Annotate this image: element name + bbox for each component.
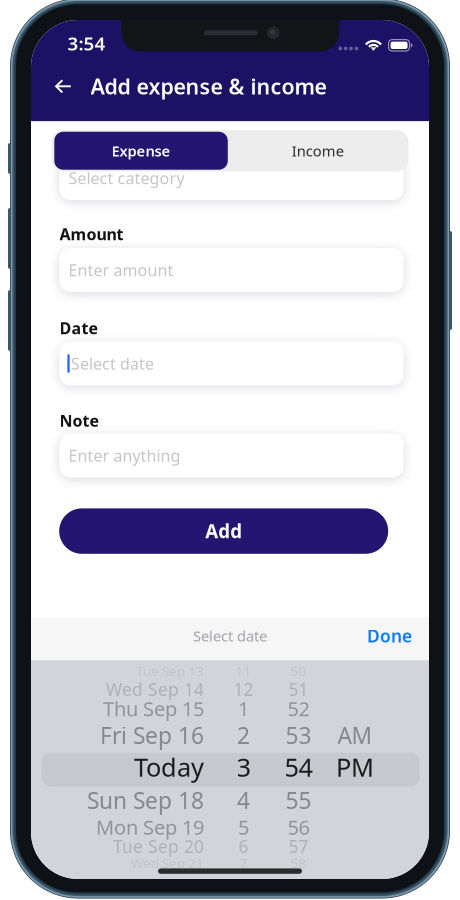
staticText: Done	[367, 624, 412, 647]
staticText: PM	[336, 750, 374, 784]
staticText: 3	[236, 750, 250, 784]
button[interactable]: Enter anything	[59, 433, 403, 477]
button[interactable]: Income	[228, 132, 407, 170]
button[interactable]: Back	[50, 74, 76, 99]
staticText: Wed Sep 14	[106, 678, 204, 701]
staticText: 3:54	[67, 31, 105, 56]
button[interactable]: Select category	[59, 156, 403, 200]
button[interactable]: Enter amount	[59, 248, 403, 292]
staticText: Enter anything	[68, 445, 180, 466]
button[interactable]: Expense	[54, 132, 228, 170]
staticText: 7	[239, 854, 247, 872]
staticText: Add	[205, 519, 242, 543]
staticText: 6	[238, 835, 248, 858]
staticText: 12	[233, 678, 253, 701]
staticText: Sun Sep 18	[87, 785, 204, 815]
staticText: Mon Sep 19	[96, 814, 204, 840]
staticText: Today	[134, 750, 204, 784]
button[interactable]: Select date	[59, 341, 403, 385]
staticText: Expense	[111, 141, 170, 160]
staticText: Select date	[71, 353, 154, 374]
staticText: Enter amount	[68, 259, 173, 281]
staticText: 57	[288, 835, 308, 858]
staticText: AM	[337, 720, 372, 750]
staticText: 11	[235, 662, 251, 680]
staticText: 2	[237, 720, 250, 750]
staticText: 53	[285, 720, 311, 750]
staticText: 52	[287, 695, 309, 722]
staticText: Wed Sep 21	[131, 854, 204, 872]
staticText: Thu Sep 15	[103, 695, 204, 722]
staticText: 1	[238, 695, 249, 722]
staticText: Select category	[68, 167, 184, 189]
staticText: 51	[288, 678, 308, 701]
staticText: Add expense & income	[90, 72, 326, 100]
button[interactable]: Add	[59, 508, 388, 554]
staticText: 5	[238, 814, 249, 840]
staticText: 58	[290, 854, 306, 872]
staticText: Tue Sep 20	[113, 835, 204, 858]
staticText: 56	[287, 814, 309, 840]
button[interactable]: Add expense & income	[90, 66, 326, 106]
staticText: Amount	[59, 223, 123, 245]
staticText: Note	[59, 410, 99, 431]
staticText: Date	[59, 317, 98, 339]
staticText: Income	[292, 141, 344, 160]
staticText: 4	[237, 785, 250, 815]
staticText: 54	[284, 750, 312, 784]
staticText: Select date	[193, 626, 267, 646]
button[interactable]: Done	[367, 613, 429, 658]
staticText: Fri Sep 16	[100, 720, 204, 750]
staticText: Tue Sep 13	[136, 662, 204, 680]
staticText: 55	[285, 785, 311, 815]
staticText: 50	[290, 662, 306, 680]
